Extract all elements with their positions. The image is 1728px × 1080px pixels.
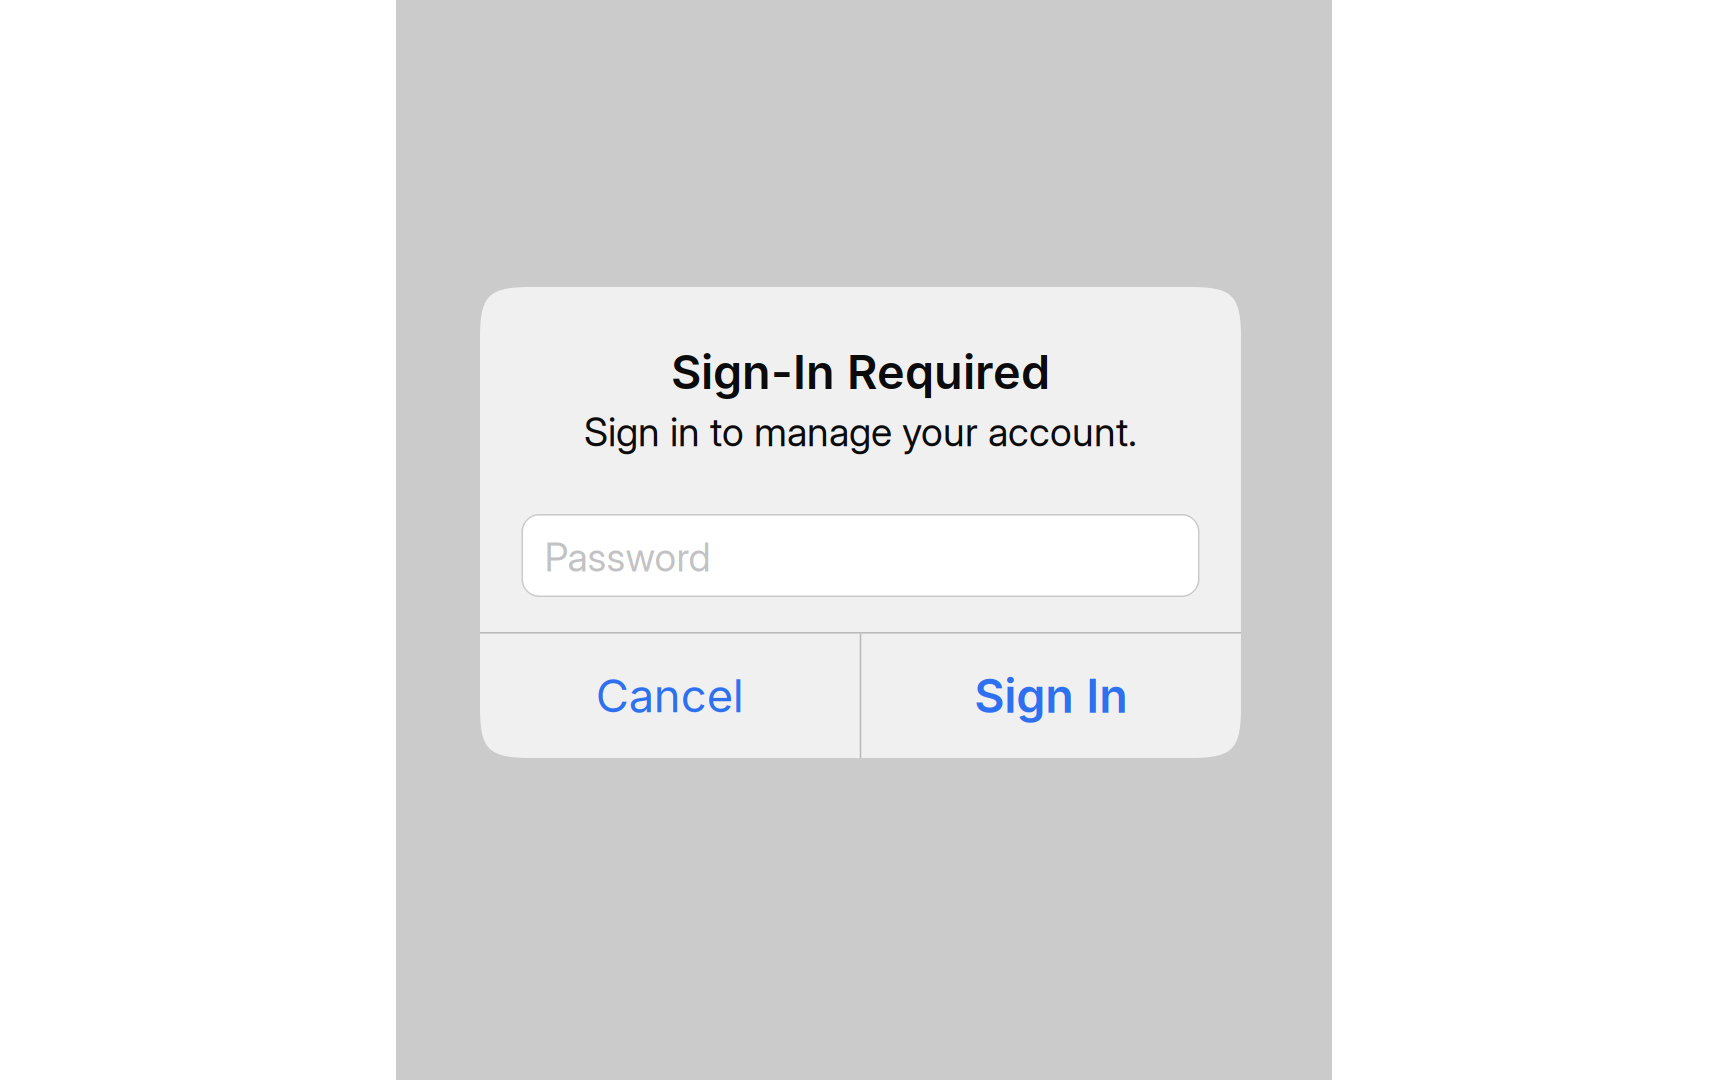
button[interactable]: Password [521,514,1199,597]
staticText: Sign In [974,668,1128,724]
staticText: Cancel [596,668,744,723]
staticText: Sign-In Required [671,344,1050,400]
staticText: Sign in to manage your account. [584,408,1137,455]
button[interactable]: Sign In [861,634,1241,758]
staticText: Password [544,534,710,581]
button[interactable]: Cancel [480,634,860,758]
